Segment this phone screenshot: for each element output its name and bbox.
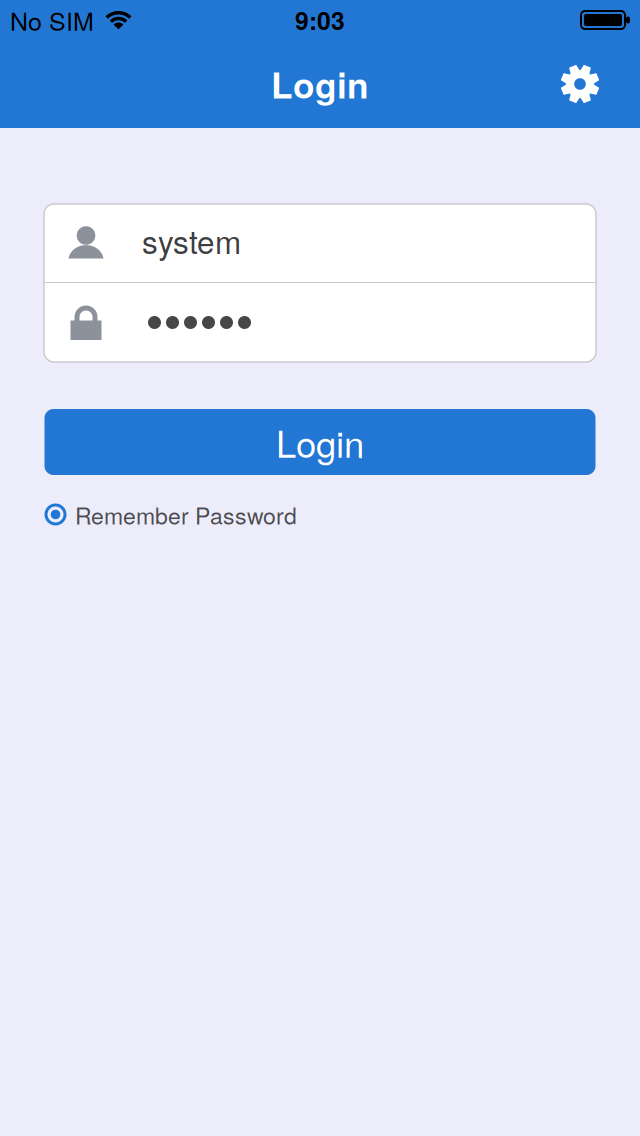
button[interactable] — [558, 62, 640, 106]
staticText: No SIM — [10, 2, 94, 38]
staticText: Login — [271, 59, 369, 109]
staticText: system — [142, 218, 241, 263]
button[interactable]: Login — [44, 409, 595, 475]
staticText: 9:03 — [295, 2, 345, 38]
staticText: Login — [276, 416, 364, 468]
button[interactable] — [44, 283, 596, 362]
button[interactable]: Remember Password — [0, 498, 640, 531]
button[interactable]: system — [44, 204, 596, 282]
staticText: Remember Password — [75, 498, 297, 531]
